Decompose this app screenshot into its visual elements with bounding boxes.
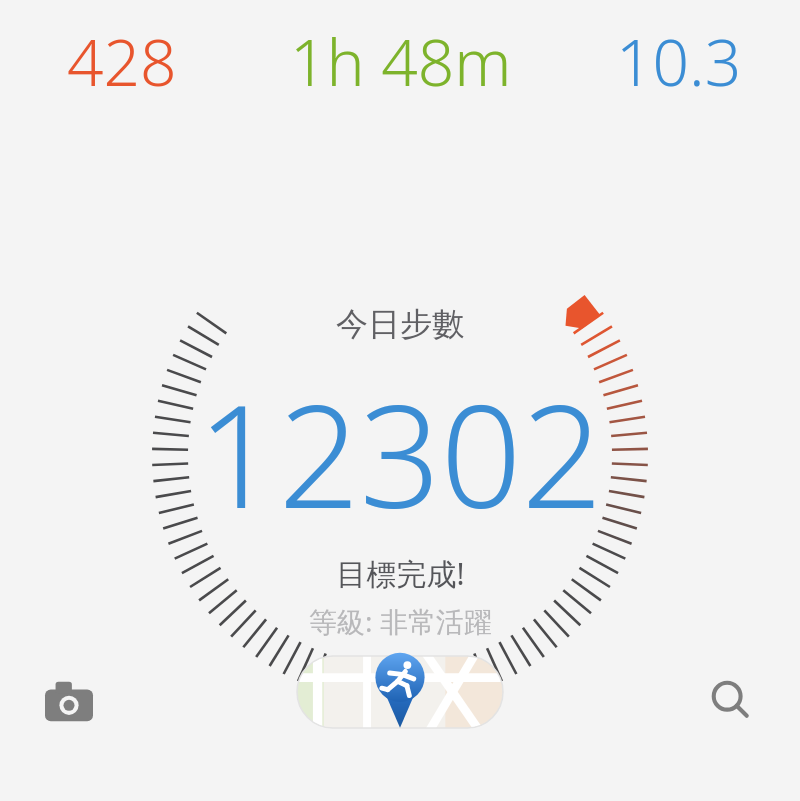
staticText: 等級: 非常活躍 xyxy=(309,602,492,640)
staticText: 428 xyxy=(67,18,177,105)
staticText: 今日步數 xyxy=(336,304,464,344)
button[interactable]: Map, start activity xyxy=(297,656,503,728)
button[interactable]: Search xyxy=(688,658,774,744)
staticText: 目標完成! xyxy=(336,553,465,594)
button[interactable]: 1h 48m xyxy=(243,0,558,122)
button[interactable]: Daily step progress dial xyxy=(0,0,800,801)
button[interactable]: 10.3 xyxy=(558,0,800,122)
button[interactable]: Camera xyxy=(26,658,112,744)
button[interactable]: 428 xyxy=(0,0,243,122)
staticText: 12302 xyxy=(197,356,603,549)
staticText: 10.3 xyxy=(616,18,742,105)
staticText: 1h 48m xyxy=(290,18,512,105)
